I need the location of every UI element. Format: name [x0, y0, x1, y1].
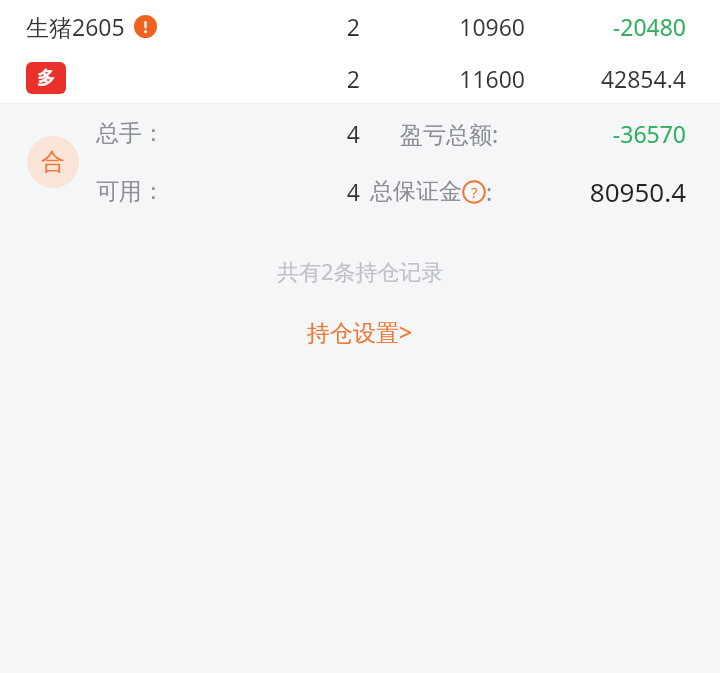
staticText: 2 [346, 11, 360, 42]
staticText: 持仓设置> [307, 316, 413, 347]
staticText: ? [471, 182, 478, 202]
staticText: 总保证金 [370, 177, 462, 206]
button[interactable]: 总保证金说明 [462, 180, 486, 204]
staticText: -20480 [612, 11, 686, 42]
staticText: 10960 [459, 11, 525, 42]
staticText: 4 [346, 176, 360, 207]
staticText: 4 [346, 118, 360, 149]
staticText: : [486, 176, 493, 207]
staticText: 42854.4 [600, 63, 686, 94]
staticText: 盈亏总额: [400, 118, 499, 149]
staticText: 总手： [96, 119, 165, 148]
button[interactable]: 持仓设置> [291, 310, 429, 353]
staticText: 生猪2605 [26, 11, 125, 42]
staticText: -36570 [612, 118, 686, 149]
staticText: 11600 [459, 63, 525, 94]
staticText: 80950.4 [589, 174, 686, 209]
staticText: 2 [346, 63, 360, 94]
button[interactable]: 生猪2605 [0, 0, 720, 104]
staticText: 共有2条持仓记录 [277, 256, 444, 286]
other: 警告 [134, 15, 157, 38]
staticText: 可用： [96, 177, 165, 206]
staticText: 多 [37, 67, 55, 90]
staticText: 合 [41, 147, 65, 177]
